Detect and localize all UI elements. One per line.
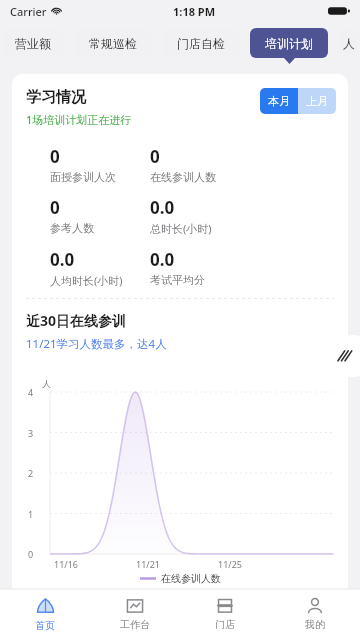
staticText: 培训计划	[265, 36, 313, 51]
staticText: 常规巡检	[89, 36, 137, 51]
staticText: 11/25	[218, 558, 242, 570]
staticText: 工作台	[120, 618, 150, 631]
button[interactable]: 营业额	[2, 28, 64, 58]
button[interactable]: 工作台	[90, 589, 180, 639]
staticText: 门店	[215, 618, 235, 631]
staticText: 0	[50, 196, 60, 219]
staticText: 11/16	[54, 558, 78, 570]
staticText: 在线参训人数	[161, 572, 221, 585]
staticText: 11/21	[136, 558, 160, 570]
staticText: 学习情况	[26, 88, 86, 107]
staticText: 人	[343, 36, 355, 51]
button[interactable]: 门店	[180, 589, 270, 639]
button[interactable]: 培训计划	[250, 28, 328, 58]
button[interactable]: 我的	[270, 589, 360, 639]
button[interactable]: Feedback	[332, 335, 360, 377]
staticText: 0	[50, 145, 60, 168]
staticText: 4	[28, 386, 34, 398]
staticText: 近30日在线参训	[26, 311, 127, 330]
staticText: 考试平均分	[150, 273, 205, 287]
staticText: 3	[28, 427, 34, 439]
button[interactable]: 首页	[0, 589, 90, 639]
staticText: 0	[150, 145, 160, 168]
button[interactable]: 门店自检	[162, 28, 240, 58]
staticText: 0	[28, 548, 34, 560]
staticText: 11/21学习人数最多，达4人	[26, 336, 167, 352]
staticText: 人均时长(小时)	[50, 273, 123, 288]
staticText: 参考人数	[50, 221, 94, 235]
staticText: 首页	[35, 619, 55, 632]
staticText: 1:18 PM	[173, 4, 216, 19]
button[interactable]: 人	[338, 28, 360, 58]
staticText: 我的	[305, 618, 325, 631]
button[interactable]: 上月	[298, 88, 336, 114]
staticText: 上月	[306, 94, 328, 108]
staticText: 0.0	[150, 248, 175, 271]
staticText: 在线参训人数	[150, 170, 216, 184]
staticText: 人	[42, 378, 51, 389]
staticText: 2	[28, 467, 34, 479]
staticText: 门店自检	[177, 36, 225, 51]
staticText: 面授参训人次	[50, 170, 116, 184]
button[interactable]: 常规巡检	[74, 28, 152, 58]
staticText: 营业额	[15, 36, 51, 51]
button[interactable]: 本月	[260, 88, 298, 114]
staticText: 0.0	[50, 248, 75, 271]
staticText: Carrier	[10, 4, 47, 19]
staticText: 1场培训计划正在进行	[26, 112, 132, 127]
staticText: 总时长(小时)	[150, 221, 212, 236]
staticText: 本月	[268, 94, 290, 108]
staticText: 0.0	[150, 196, 175, 219]
staticText: 1	[28, 508, 34, 520]
